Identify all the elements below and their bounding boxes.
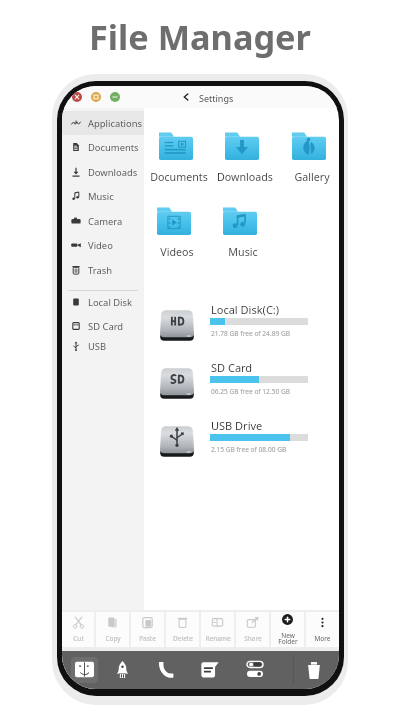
staticText: Share xyxy=(244,634,262,643)
staticText: Documents xyxy=(150,170,208,185)
staticText: Local Disk xyxy=(88,296,133,309)
button[interactable]: SD Card xyxy=(62,360,339,414)
button[interactable]: Trash xyxy=(62,258,144,282)
staticText: Rename xyxy=(205,634,231,643)
staticText: Applications xyxy=(88,117,142,130)
staticText: Downloads xyxy=(88,166,138,179)
button[interactable]: Applications xyxy=(62,111,144,135)
staticText: Paste xyxy=(139,634,156,643)
staticText: Music xyxy=(228,245,258,260)
button[interactable]: Share xyxy=(236,612,269,647)
button[interactable]: SD Card xyxy=(62,314,144,338)
button[interactable]: Video xyxy=(62,233,144,257)
staticText: Video xyxy=(88,239,113,252)
button[interactable]: Documents xyxy=(137,132,215,185)
button[interactable]: Delete xyxy=(166,612,199,647)
button[interactable]: Copy xyxy=(96,612,129,647)
button[interactable]: Music xyxy=(201,207,279,260)
staticText: USB Drive xyxy=(211,418,263,433)
staticText: Camera xyxy=(88,215,123,228)
staticText: Downloads xyxy=(217,170,273,185)
staticText: Music xyxy=(88,190,114,203)
staticText: Trash xyxy=(88,264,113,277)
staticText: 21.78 GB free of 24.89 GB xyxy=(211,329,291,338)
staticText: New Folder xyxy=(278,631,298,646)
staticText: Delete xyxy=(173,634,193,643)
button[interactable]: New Folder xyxy=(271,612,304,647)
staticText: 06.25 GB free of 12.50 GB xyxy=(211,387,291,396)
button[interactable]: Finder xyxy=(71,653,97,686)
staticText: Documents xyxy=(88,141,139,154)
staticText: SD Card xyxy=(88,320,124,333)
staticText: More xyxy=(314,634,331,643)
staticText: Local Disk(C:) xyxy=(211,302,280,317)
button[interactable]: Settings xyxy=(242,653,268,686)
button[interactable]: Phone xyxy=(153,653,179,686)
button[interactable]: Documents xyxy=(62,135,144,159)
button[interactable]: Messages xyxy=(197,653,223,686)
button[interactable]: Launchpad xyxy=(109,653,135,686)
button[interactable]: Gallery xyxy=(270,132,339,185)
button[interactable]: Downloads xyxy=(62,160,144,184)
button[interactable]: Rename xyxy=(201,612,234,647)
button[interactable]: Music xyxy=(62,184,144,208)
staticText: File Manager xyxy=(89,13,311,60)
button[interactable]: Local Disk xyxy=(62,290,144,314)
button[interactable]: Back xyxy=(180,91,192,103)
button[interactable]: More xyxy=(306,612,339,647)
button[interactable]: Trash xyxy=(300,652,328,687)
staticText: SD Card xyxy=(211,360,253,375)
button[interactable]: Downloads xyxy=(203,132,281,185)
staticText: Gallery xyxy=(294,170,330,185)
staticText: 2.15 GB free of 08.00 GB xyxy=(211,445,287,454)
button[interactable]: Videos xyxy=(135,207,213,260)
staticText: USB xyxy=(88,340,107,353)
staticText: Copy xyxy=(105,634,121,643)
button[interactable]: USB Drive xyxy=(62,418,339,472)
button[interactable]: USB xyxy=(62,334,144,358)
button[interactable]: Cut xyxy=(62,612,94,647)
staticText: Cut xyxy=(73,634,84,643)
staticText: Videos xyxy=(160,245,194,260)
button[interactable]: Camera xyxy=(62,209,144,233)
staticText: Settings xyxy=(199,92,234,104)
button[interactable]: Local Disk(C:) xyxy=(62,302,339,356)
button[interactable]: Paste xyxy=(131,612,164,647)
